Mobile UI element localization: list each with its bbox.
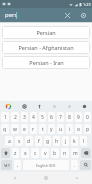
button[interactable]: Search — [80, 160, 91, 170]
button[interactable]: Voice search — [79, 11, 88, 20]
button[interactable]: . — [71, 160, 78, 170]
staticText: English (US) — [36, 163, 56, 168]
button[interactable]: 1 — [1, 112, 9, 122]
button[interactable]: w — [11, 124, 19, 134]
button[interactable]: Home — [30, 172, 61, 184]
button[interactable]: a — [5, 136, 13, 146]
button[interactable]: 5 — [39, 112, 46, 122]
staticText: 2 — [14, 114, 17, 121]
staticText: . — [74, 162, 76, 169]
staticText: p — [86, 126, 90, 133]
staticText: 9 — [77, 114, 80, 121]
staticText: q — [3, 126, 7, 133]
staticText: Persian - Iran — [29, 59, 64, 66]
button[interactable]: j — [62, 136, 69, 146]
staticText: 8 — [68, 114, 71, 121]
staticText: m — [73, 150, 78, 157]
button[interactable]: v — [41, 148, 49, 158]
button[interactable]: l — [80, 136, 87, 146]
staticText: pers — [5, 11, 18, 19]
staticText: w — [13, 126, 17, 133]
staticText: 4 — [32, 114, 35, 121]
button[interactable]: 9 — [75, 112, 82, 122]
staticText: v — [44, 150, 47, 157]
button[interactable]: Settings — [16, 101, 32, 111]
button[interactable]: 4 — [30, 112, 37, 122]
staticText: a — [8, 138, 11, 145]
button[interactable]: c — [31, 148, 39, 158]
staticText: 7 — [59, 114, 62, 121]
staticText: l — [83, 138, 85, 145]
staticText: f — [38, 138, 40, 145]
button[interactable]: English (US) — [23, 160, 69, 170]
button[interactable]: Backspace — [81, 148, 91, 158]
button[interactable]: f — [35, 136, 42, 146]
staticText: z — [14, 150, 17, 157]
button[interactable]: 3 — [21, 112, 28, 122]
button[interactable]: Google — [0, 101, 16, 111]
button[interactable]: 6 — [48, 112, 55, 122]
button[interactable]: t — [39, 124, 46, 134]
button[interactable]: 0 — [84, 112, 91, 122]
button[interactable]: Voice input — [32, 101, 47, 111]
staticText: u — [59, 126, 63, 133]
staticText: y — [50, 126, 53, 133]
staticText: r — [32, 126, 35, 133]
button[interactable]: Persian — [2, 26, 90, 39]
button[interactable]: o — [75, 124, 82, 134]
staticText: 1:21 — [83, 2, 91, 7]
button[interactable]: 8 — [66, 112, 73, 122]
button[interactable]: q — [1, 124, 9, 134]
button[interactable]: s — [15, 136, 23, 146]
button[interactable]: g — [44, 136, 51, 146]
staticText: 6 — [50, 114, 53, 121]
button[interactable]: , — [14, 160, 21, 170]
staticText: b — [53, 150, 57, 157]
staticText: t — [42, 126, 44, 133]
staticText: d — [27, 138, 31, 145]
button[interactable]: More options — [77, 101, 92, 111]
button[interactable]: d — [25, 136, 33, 146]
staticText: o — [77, 126, 81, 133]
button[interactable]: Shift — [1, 148, 10, 158]
button[interactable]: Persian - Afghanistan — [2, 41, 90, 54]
button[interactable]: k — [71, 136, 78, 146]
button[interactable]: Clear search — [63, 11, 72, 20]
staticText: 0 — [86, 114, 89, 121]
button[interactable]: i — [66, 124, 73, 134]
staticText: i — [69, 126, 71, 133]
staticText: g — [46, 138, 50, 145]
button[interactable]: m — [71, 148, 79, 158]
staticText: 5 — [41, 114, 44, 121]
staticText: !#1 — [4, 163, 10, 168]
button[interactable]: b — [51, 148, 59, 158]
staticText: Persian - Afghanistan — [18, 44, 74, 51]
button[interactable]: z — [12, 148, 19, 158]
button[interactable]: p — [84, 124, 91, 134]
staticText: Persian — [36, 29, 56, 36]
staticText: c — [34, 150, 37, 157]
button[interactable]: y — [48, 124, 55, 134]
button[interactable]: n — [61, 148, 69, 158]
staticText: 1 — [4, 114, 7, 121]
button[interactable]: Persian - Iran — [2, 56, 90, 69]
staticText: k — [73, 138, 76, 145]
staticText: , — [17, 162, 19, 169]
staticText: n — [63, 150, 67, 157]
button[interactable]: 2 — [11, 112, 19, 122]
button[interactable]: e — [21, 124, 28, 134]
button[interactable]: u — [57, 124, 64, 134]
button[interactable]: r — [30, 124, 37, 134]
staticText: j — [65, 138, 67, 145]
staticText: h — [55, 138, 59, 145]
staticText: 3 — [23, 114, 26, 121]
button[interactable]: 7 — [57, 112, 64, 122]
button[interactable]: h — [53, 136, 60, 146]
button[interactable]: Stickers — [47, 101, 62, 111]
button[interactable]: Clipboard — [62, 101, 77, 111]
staticText: s — [18, 138, 21, 145]
button[interactable]: x — [21, 148, 29, 158]
button[interactable]: !#1 — [1, 160, 12, 170]
